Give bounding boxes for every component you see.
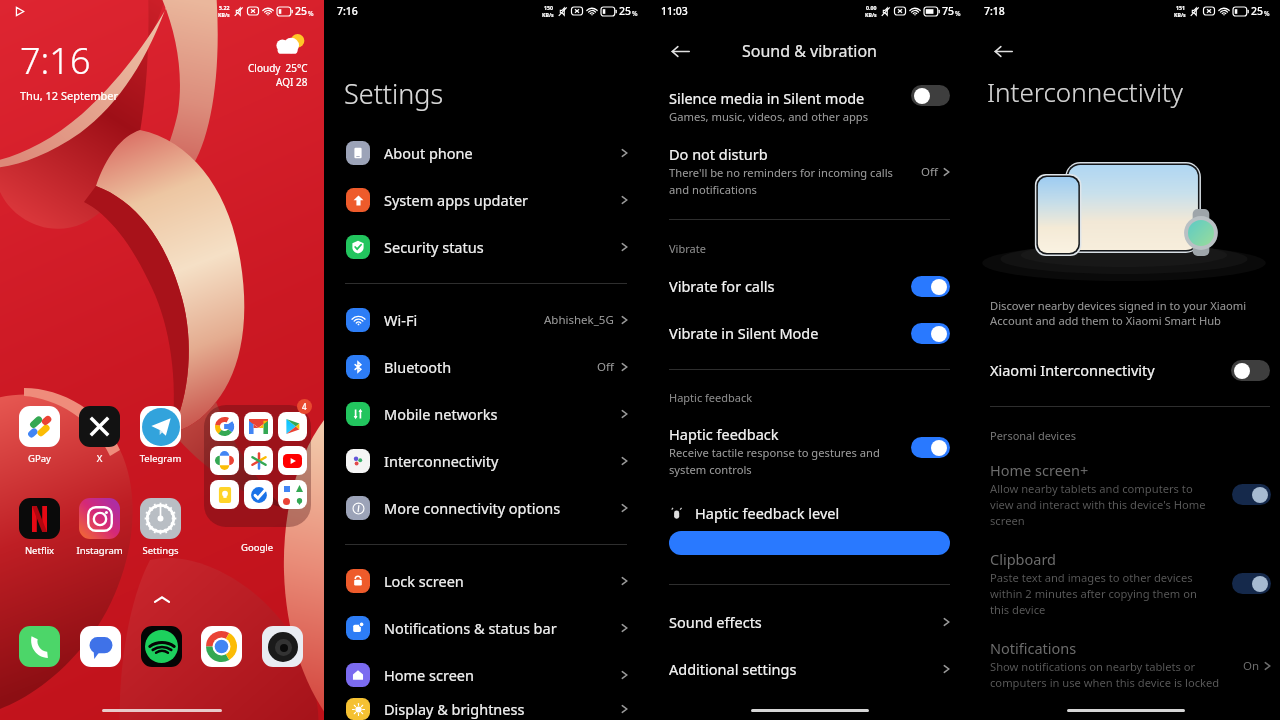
button[interactable]: Lock screen xyxy=(324,557,648,604)
staticText: Security status xyxy=(384,237,484,257)
staticText: Wi-Fi xyxy=(384,310,418,330)
staticText: Lock screen xyxy=(384,571,464,591)
button[interactable]: Google folder xyxy=(204,405,311,527)
button[interactable]: Open app drawer xyxy=(145,588,179,610)
staticText: Google xyxy=(241,541,274,554)
button[interactable]: Spotify xyxy=(141,626,182,667)
button[interactable]: Additional settings xyxy=(648,647,971,691)
button[interactable]: App xyxy=(278,412,307,441)
button[interactable]: Mobile networks xyxy=(324,390,648,437)
button[interactable]: Notifications xyxy=(971,638,1280,690)
staticText: KB/s xyxy=(865,11,877,18)
staticText: About phone xyxy=(384,143,473,163)
button[interactable]: Xiaomi Interconnectivity xyxy=(971,359,1280,381)
button[interactable]: Interconnectivity xyxy=(324,437,648,484)
button[interactable]: Sound effects xyxy=(648,600,971,644)
staticText: 7:16 xyxy=(337,4,358,18)
button[interactable]: Messages xyxy=(80,626,121,667)
button[interactable]: About phone xyxy=(324,129,648,176)
staticText: Games, music, videos, and other apps xyxy=(669,109,869,124)
staticText: AQI 28 xyxy=(276,75,308,89)
staticText: Cloudy 25°C xyxy=(248,61,308,75)
button[interactable]: Display & brightness xyxy=(324,698,648,720)
button[interactable]: Silence media in Silent mode xyxy=(648,88,971,124)
staticText: Interconnectivity xyxy=(987,74,1183,109)
button[interactable]: Home screen xyxy=(324,651,648,698)
button[interactable]: Security status xyxy=(324,223,648,270)
button[interactable]: More connectivity options xyxy=(324,484,648,531)
staticText: 4 xyxy=(302,401,307,412)
staticText: Discover nearby devices signed in to you… xyxy=(990,298,1247,328)
staticText: On xyxy=(1243,658,1260,674)
button[interactable]: App xyxy=(210,480,239,509)
staticText: Telegram xyxy=(130,452,191,465)
staticText: Display & brightness xyxy=(384,699,525,719)
button[interactable]: GPay xyxy=(9,406,70,465)
button[interactable]: Toggle xyxy=(1231,360,1270,381)
button[interactable]: Notifications & status bar xyxy=(324,604,648,651)
button[interactable]: Instagram xyxy=(69,498,130,557)
button[interactable]: Toggle xyxy=(1232,573,1271,594)
staticText: % xyxy=(955,9,961,18)
button[interactable]: Toggle xyxy=(911,85,950,106)
staticText: Sound effects xyxy=(669,612,762,632)
button[interactable]: X xyxy=(69,406,130,465)
button[interactable]: Toggle xyxy=(1232,484,1271,505)
staticText: 0.00 xyxy=(866,4,877,11)
button[interactable]: Toggle xyxy=(911,276,950,297)
staticText: Thu, 12 September xyxy=(20,88,118,103)
staticText: 25 xyxy=(295,4,308,18)
staticText: Haptic feedback xyxy=(669,390,753,405)
button[interactable]: Bluetooth xyxy=(324,343,648,390)
staticText: 7:16 xyxy=(20,36,91,85)
staticText: Sound & vibration xyxy=(742,40,877,62)
button[interactable]: Camera xyxy=(262,626,303,667)
staticText: 25 xyxy=(619,4,632,18)
button[interactable]: App xyxy=(244,480,273,509)
staticText: Home screen xyxy=(384,665,474,685)
staticText: 7:18 xyxy=(984,4,1005,18)
button[interactable]: Clipboard xyxy=(971,549,1280,617)
button[interactable]: Phone xyxy=(19,626,60,667)
button[interactable]: Haptic feedback xyxy=(648,424,971,477)
button[interactable]: Wi-Fi xyxy=(324,296,648,343)
staticText: Vibrate for calls xyxy=(669,276,775,296)
button[interactable]: Telegram xyxy=(130,406,191,465)
staticText: Allow nearby tablets and computers to vi… xyxy=(990,481,1206,528)
button[interactable]: Haptic feedback level slider xyxy=(669,531,950,555)
staticText: Abhishek_5G xyxy=(544,312,614,328)
button[interactable]: Back xyxy=(992,40,1014,62)
staticText: 11:03 xyxy=(661,4,688,18)
button[interactable]: Toggle xyxy=(911,323,950,344)
button[interactable]: App xyxy=(244,412,273,441)
button[interactable]: Back xyxy=(669,40,691,62)
button[interactable]: App xyxy=(210,412,239,441)
staticText: Netflix xyxy=(9,544,70,557)
button[interactable]: Home screen+ xyxy=(971,460,1280,528)
button[interactable]: App xyxy=(210,446,239,475)
staticText: Settings xyxy=(130,544,191,557)
button[interactable]: App xyxy=(278,480,307,509)
staticText: % xyxy=(1264,9,1270,18)
staticText: Haptic feedback level xyxy=(695,503,840,523)
button[interactable]: Vibrate in Silent Mode xyxy=(648,322,971,344)
staticText: Haptic feedback xyxy=(669,424,779,444)
button[interactable]: Vibrate for calls xyxy=(648,275,971,297)
staticText: There'll be no reminders for incoming ca… xyxy=(669,165,893,197)
staticText: Notifications & status bar xyxy=(384,618,557,638)
staticText: KB/s xyxy=(218,11,230,18)
button[interactable]: Chrome xyxy=(201,626,242,667)
button[interactable]: System apps updater xyxy=(324,176,648,223)
button[interactable]: Settings xyxy=(130,498,191,557)
button[interactable]: Toggle xyxy=(911,437,950,458)
staticText: 150 xyxy=(544,4,553,11)
staticText: % xyxy=(632,9,638,18)
staticText: Show notifications on nearby tablets or … xyxy=(990,659,1220,690)
staticText: Clipboard xyxy=(990,549,1057,569)
staticText: Settings xyxy=(344,75,444,112)
button[interactable]: Netflix xyxy=(9,498,70,557)
button[interactable]: App xyxy=(244,446,273,475)
button[interactable]: Do not disturb xyxy=(648,144,971,197)
staticText: 25 xyxy=(1251,4,1264,18)
button[interactable]: App xyxy=(278,446,307,475)
